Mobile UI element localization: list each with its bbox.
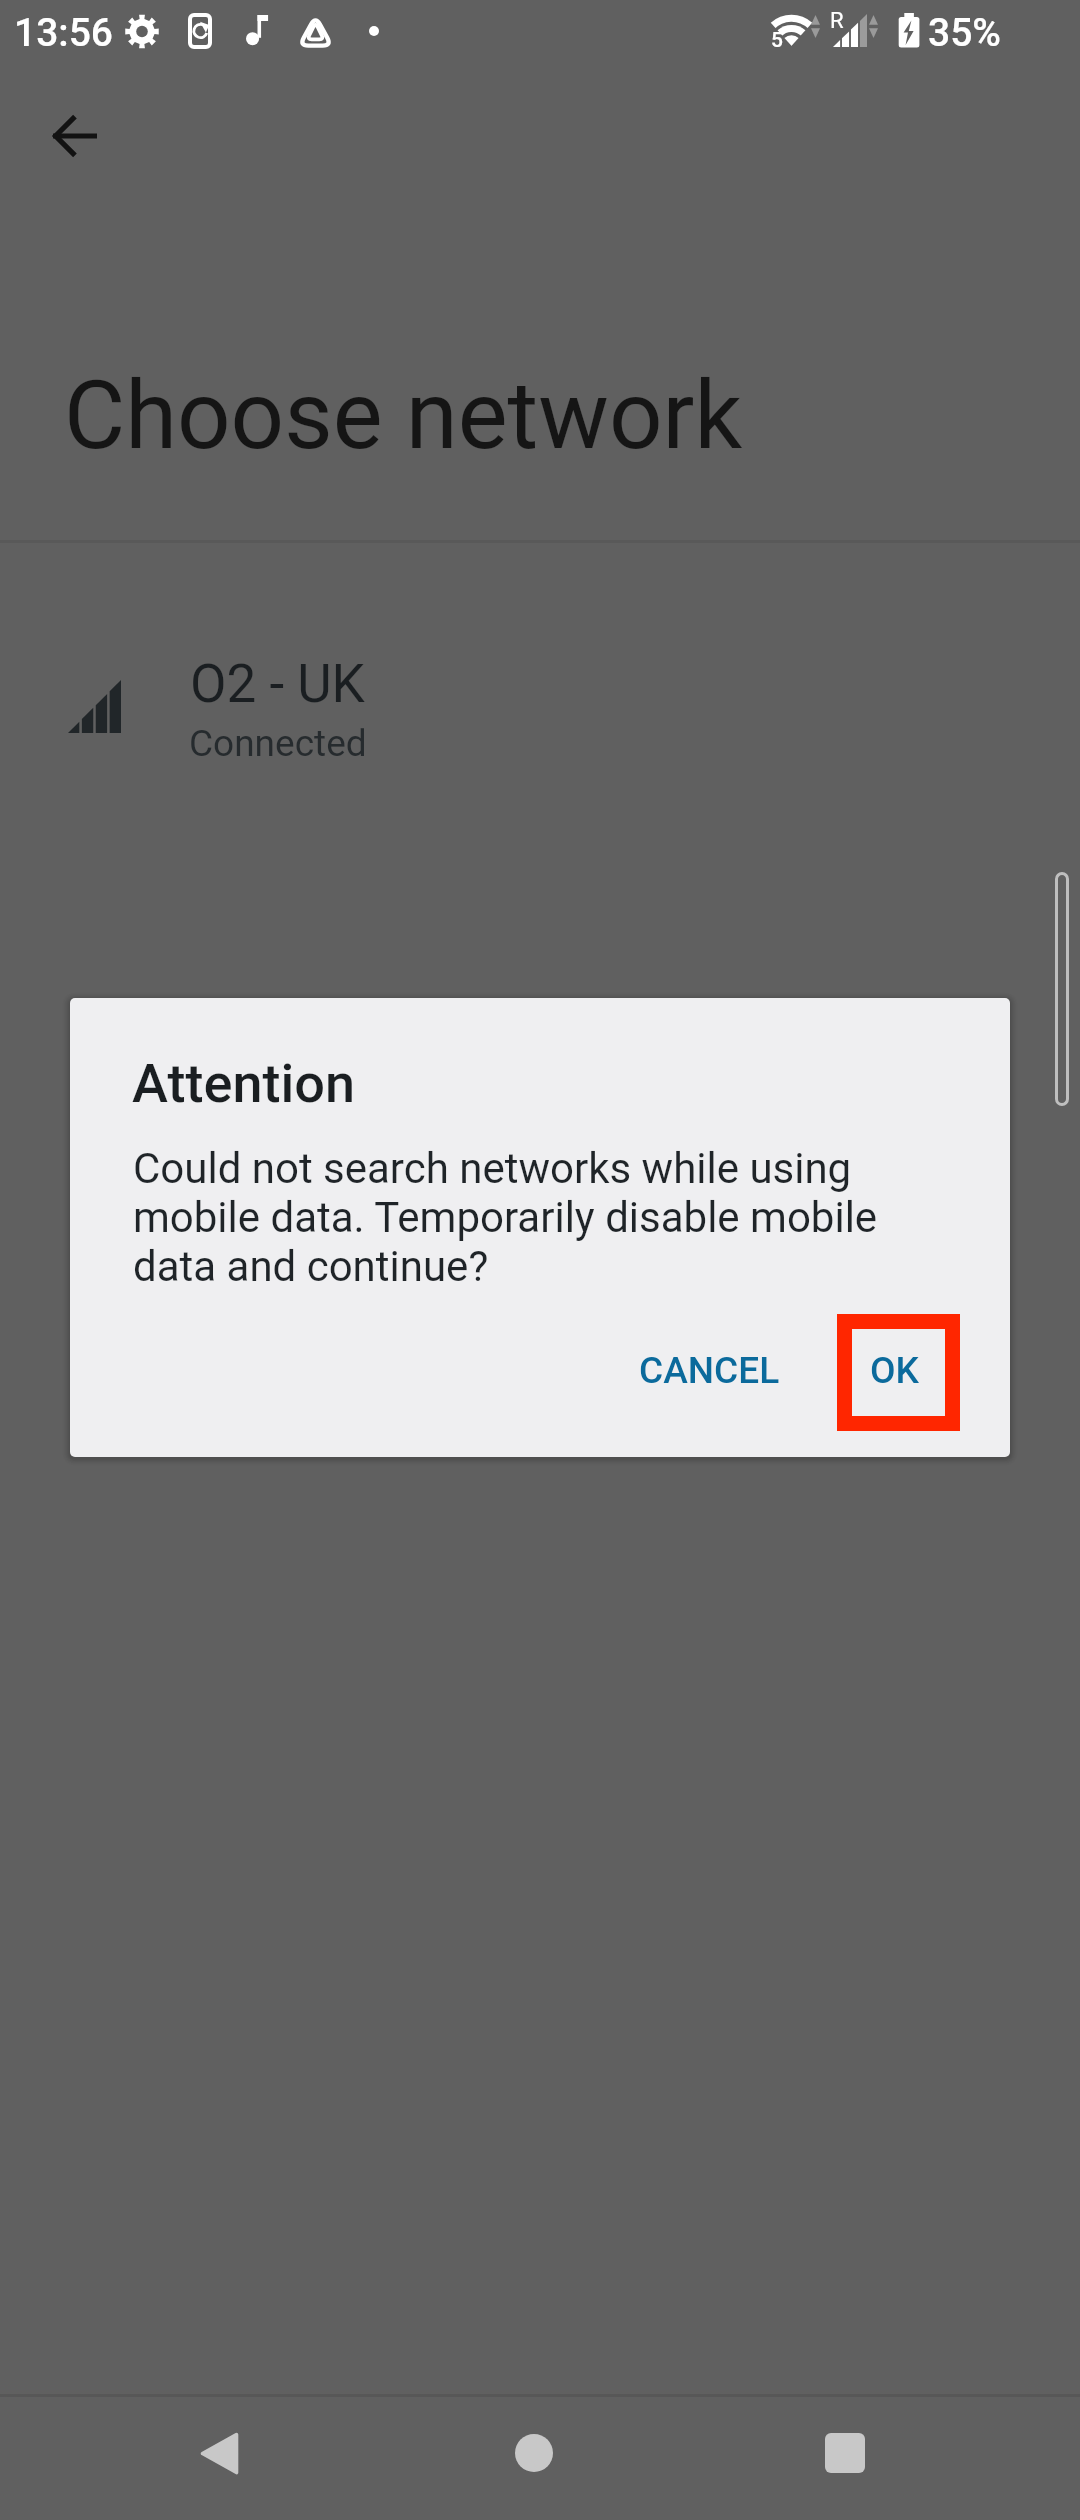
staticText: 13:56 [14,10,114,56]
staticText: Connected [189,722,367,765]
staticText: OK [870,1349,919,1392]
staticText: Could not search networks while using mo… [133,1144,903,1291]
button[interactable]: Home [474,2393,594,2513]
button[interactable]: CANCEL [568,1312,850,1428]
button[interactable]: Recent apps [785,2393,905,2513]
staticText: O2 - UK [190,653,365,715]
button[interactable]: Navigate up [25,86,125,186]
staticText: 5 [771,28,783,53]
button[interactable]: O2 - UK [0,600,1080,800]
button[interactable]: OK [833,1312,956,1428]
staticText: CANCEL [639,1349,780,1392]
staticText: R [830,8,844,34]
staticText: 35% [928,10,1001,56]
staticText: Attention [132,1052,356,1115]
button[interactable]: Back [159,2393,279,2513]
staticText: Choose network [64,361,743,471]
